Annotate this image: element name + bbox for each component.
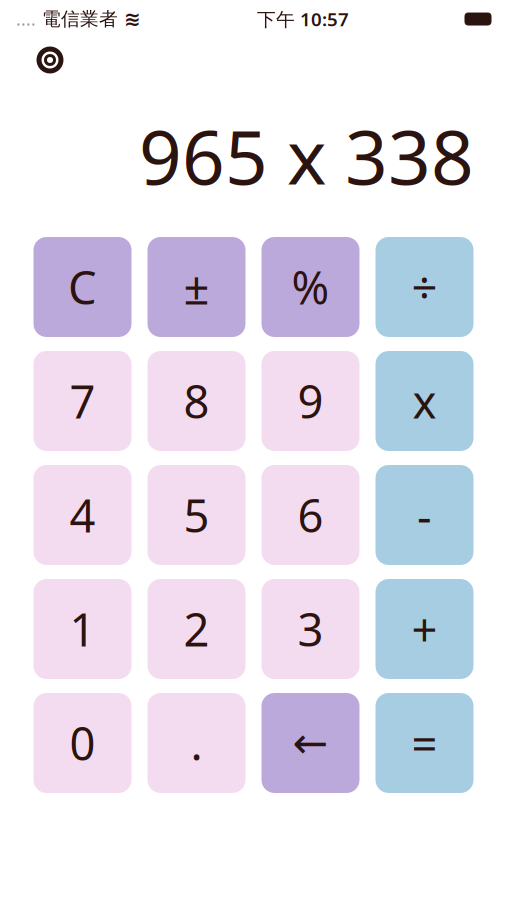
button[interactable]: . [147, 693, 245, 793]
button[interactable]: Settings [30, 40, 70, 80]
staticText: ≋ [124, 8, 141, 30]
button[interactable]: 3 [261, 579, 359, 679]
staticText: .... [16, 7, 36, 30]
button[interactable]: 8 [147, 351, 245, 451]
button[interactable]: 0 [33, 693, 131, 793]
staticText: x [412, 371, 436, 431]
staticText: 965 x 338 [139, 106, 474, 205]
staticText: 8 [183, 371, 209, 431]
staticText: 2 [183, 599, 209, 659]
staticText: % [291, 257, 329, 317]
button[interactable]: ÷ [375, 237, 473, 337]
staticText: ÷ [411, 257, 437, 317]
staticText: 9 [297, 371, 323, 431]
button[interactable]: ± [147, 237, 245, 337]
staticText: 4 [69, 485, 95, 545]
button[interactable]: 9 [261, 351, 359, 451]
button[interactable]: 6 [261, 465, 359, 565]
button[interactable]: C [33, 237, 131, 337]
staticText: 0 [69, 713, 95, 773]
button[interactable]: ← [261, 693, 359, 793]
button[interactable]: % [261, 237, 359, 337]
staticText: 7 [69, 371, 95, 431]
staticText: 5 [183, 485, 209, 545]
button[interactable]: = [375, 693, 473, 793]
staticText: 下午 10:57 [257, 7, 349, 31]
staticText: 電信業者 [36, 7, 124, 30]
button[interactable]: + [375, 579, 473, 679]
staticText: C [68, 257, 97, 317]
staticText: 3 [297, 599, 323, 659]
staticText: 1 [69, 599, 95, 659]
staticText: ± [183, 257, 209, 317]
staticText: - [417, 485, 432, 545]
button[interactable]: x [375, 351, 473, 451]
staticText: = [411, 713, 437, 773]
button[interactable]: 7 [33, 351, 131, 451]
staticText: + [411, 599, 437, 659]
staticText: 6 [297, 485, 323, 545]
button[interactable]: 1 [33, 579, 131, 679]
button[interactable]: - [375, 465, 473, 565]
button[interactable]: 5 [147, 465, 245, 565]
button[interactable]: 2 [147, 579, 245, 679]
button[interactable]: 4 [33, 465, 131, 565]
staticText: . [190, 713, 202, 773]
staticText: ← [292, 719, 328, 767]
